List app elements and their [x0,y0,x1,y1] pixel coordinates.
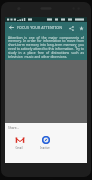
staticText: FOCUS YOUR ATTENTION [17,25,63,30]
button[interactable]: Inactive [37,134,53,150]
button[interactable]: Bookmark [76,23,86,33]
staticText: Share... [8,126,20,130]
button[interactable]: Share [66,23,76,33]
button[interactable]: Back [7,23,16,32]
staticText: Gmail [15,146,23,150]
staticText: Attention is one of the major components… [8,35,84,58]
button[interactable]: Gmail [11,134,27,150]
staticText: Inactive [40,146,50,150]
